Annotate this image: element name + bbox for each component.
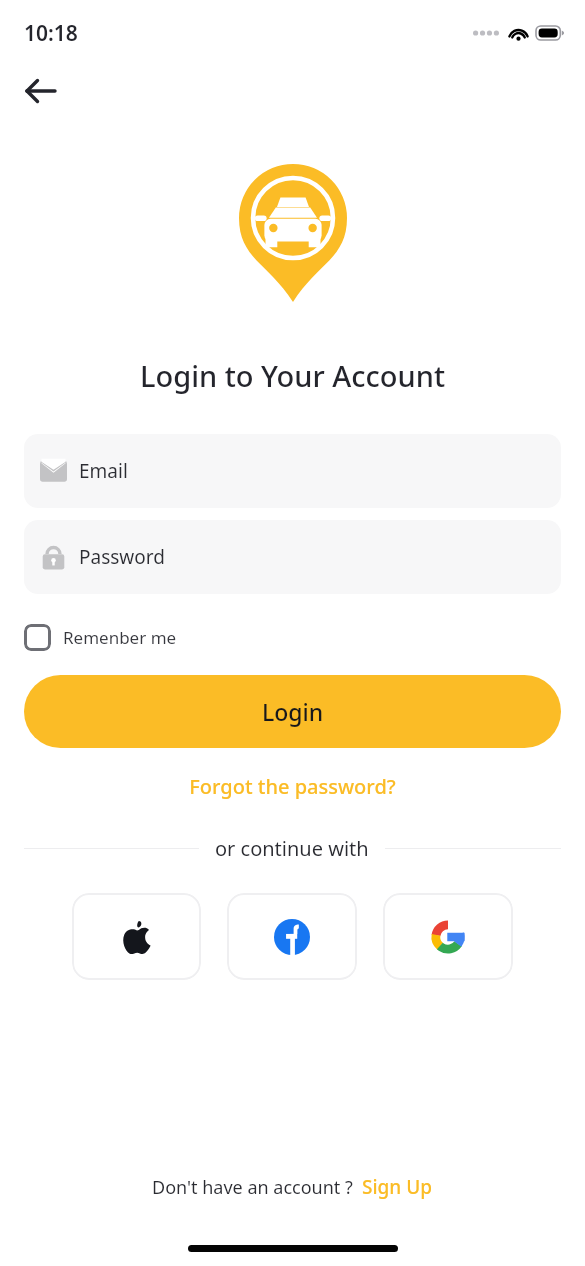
staticText: Login [262, 696, 324, 727]
button[interactable]: Sign in with Google [383, 893, 513, 980]
staticText: Email [79, 458, 128, 484]
staticText: Login to Your Account [0, 356, 585, 395]
staticText: Remenber me [63, 626, 177, 649]
staticText: Password [79, 544, 165, 570]
button[interactable]: Password [24, 520, 561, 594]
button[interactable]: Sign in with Facebook [227, 893, 357, 980]
button[interactable]: Back [12, 62, 70, 120]
button[interactable]: Sign Up [362, 1170, 433, 1204]
staticText: 10:18 [24, 19, 78, 48]
button[interactable]: Email [24, 434, 561, 508]
staticText: Don't have an account ? [152, 1175, 353, 1200]
button[interactable]: Forgot the password? [0, 770, 585, 803]
button[interactable]: Login [24, 675, 561, 748]
staticText: or continue with [215, 835, 369, 862]
button[interactable]: Remenber me [24, 620, 177, 655]
button[interactable]: Sign in with Apple [72, 893, 201, 980]
